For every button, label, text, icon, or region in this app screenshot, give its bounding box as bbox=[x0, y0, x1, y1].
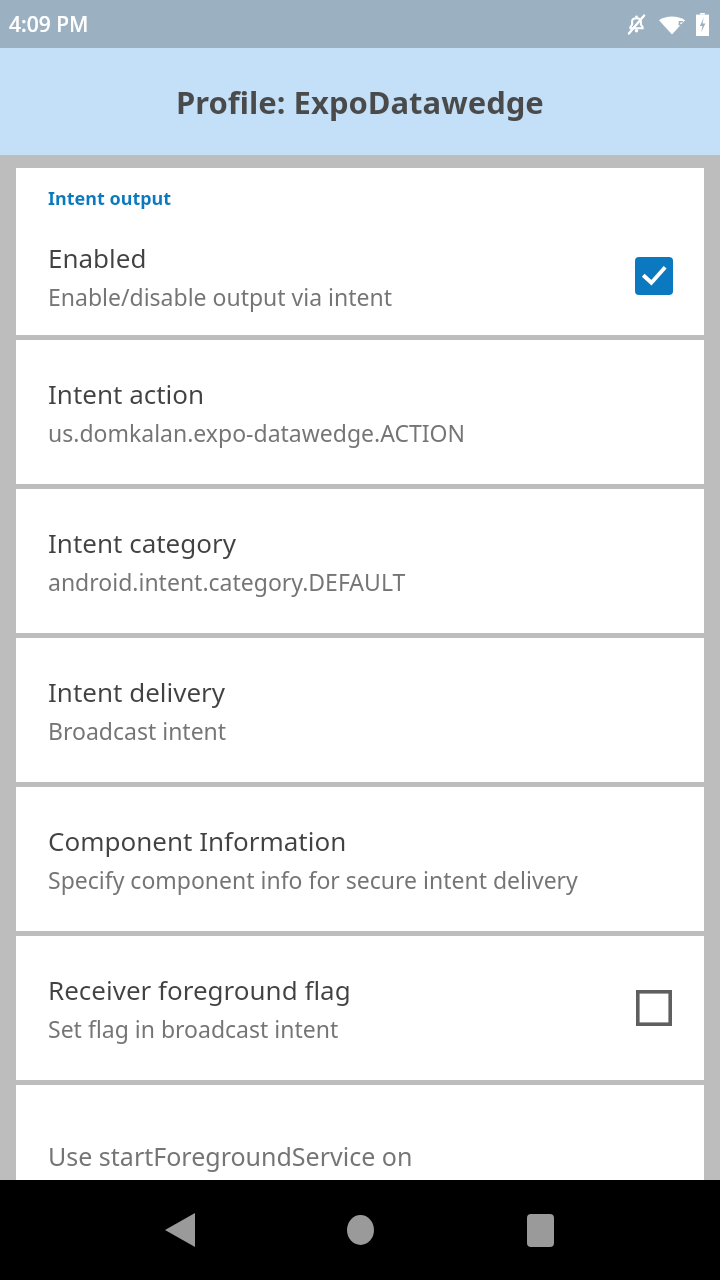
staticText: Receiver foreground flag bbox=[48, 972, 351, 1007]
staticText: Enabled bbox=[48, 240, 147, 275]
staticText: Broadcast intent bbox=[48, 715, 227, 746]
button[interactable]: Receiver foreground flag, unchecked bbox=[632, 986, 676, 1030]
button[interactable]: Back bbox=[150, 1200, 210, 1260]
staticText: Intent output bbox=[48, 186, 172, 211]
staticText: Specify component info for secure intent… bbox=[48, 864, 578, 895]
staticText: Enable/disable output via intent bbox=[48, 281, 393, 312]
staticText: 4:09 PM bbox=[9, 10, 89, 39]
button[interactable]: Use startForegroundService on bbox=[16, 1085, 704, 1180]
button[interactable]: Home bbox=[330, 1200, 390, 1260]
button[interactable]: Intent delivery bbox=[16, 638, 704, 782]
staticText: Intent delivery bbox=[48, 674, 226, 709]
staticText: android.intent.category.DEFAULT bbox=[48, 566, 406, 597]
button[interactable]: Enabled bbox=[16, 217, 704, 335]
staticText: Set flag in broadcast intent bbox=[48, 1013, 339, 1044]
staticText: Intent action bbox=[48, 376, 205, 411]
button[interactable]: Component Information bbox=[16, 787, 704, 931]
staticText: Component Information bbox=[48, 823, 347, 858]
button[interactable]: Receiver foreground flag bbox=[16, 936, 704, 1080]
button[interactable]: Recent apps bbox=[510, 1200, 570, 1260]
staticText: 5 bbox=[678, 18, 684, 32]
button[interactable]: Enabled, checked bbox=[632, 254, 676, 298]
button[interactable]: Intent action bbox=[16, 340, 704, 484]
staticText: Intent category bbox=[48, 525, 236, 560]
staticText: Use startForegroundService on bbox=[48, 1139, 413, 1173]
button[interactable]: Intent category bbox=[16, 489, 704, 633]
staticText: Profile: ExpoDatawedge bbox=[176, 81, 544, 123]
staticText: us.domkalan.expo-datawedge.ACTION bbox=[48, 417, 466, 448]
